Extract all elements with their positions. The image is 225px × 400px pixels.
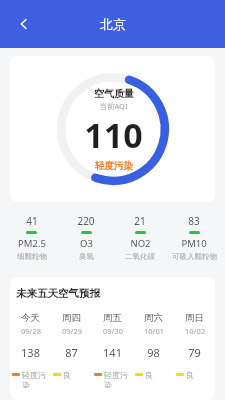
staticText: 周五 bbox=[103, 312, 122, 324]
staticText: PM2.5 bbox=[18, 237, 46, 250]
staticText: 141 bbox=[103, 345, 122, 360]
staticText: 110 bbox=[84, 112, 143, 158]
staticText: 41 bbox=[26, 214, 38, 228]
staticText: 二氧化碳 bbox=[125, 252, 155, 261]
button[interactable]: 83 bbox=[167, 212, 221, 263]
button[interactable]: 41 bbox=[4, 212, 59, 263]
staticText: 21 bbox=[134, 214, 146, 228]
button[interactable]: 周日 bbox=[174, 312, 215, 380]
staticText: 可吸入颗粒物 bbox=[172, 252, 217, 261]
staticText: 空气质量 bbox=[94, 87, 134, 100]
staticText: 98 bbox=[147, 345, 160, 360]
staticText: 09/30 bbox=[103, 326, 123, 336]
staticText: 北京 bbox=[100, 16, 126, 32]
staticText: 良 bbox=[186, 370, 194, 380]
button[interactable]: 周六 bbox=[133, 312, 174, 380]
staticText: 轻度污染 bbox=[95, 160, 133, 172]
button[interactable]: 周五 bbox=[92, 312, 133, 388]
staticText: 臭氧 bbox=[79, 252, 94, 261]
staticText: 细颗粒物 bbox=[17, 252, 47, 261]
button[interactable]: Back bbox=[8, 8, 40, 40]
staticText: 79 bbox=[188, 345, 201, 360]
staticText: 220 bbox=[77, 214, 95, 228]
button[interactable]: 220 bbox=[59, 212, 113, 263]
staticText: 良 bbox=[145, 370, 153, 380]
button[interactable]: 空气质量 bbox=[10, 56, 215, 202]
staticText: 轻度污染 bbox=[22, 370, 49, 388]
staticText: NO2 bbox=[130, 237, 151, 250]
staticText: 良 bbox=[63, 370, 71, 380]
staticText: 未来五天空气预报 bbox=[16, 287, 100, 300]
staticText: 138 bbox=[21, 345, 40, 360]
button[interactable]: 21 bbox=[113, 212, 167, 263]
staticText: 10/02 bbox=[185, 326, 205, 336]
staticText: 周日 bbox=[185, 312, 204, 324]
staticText: PM10 bbox=[181, 237, 207, 250]
staticText: 轻度污染 bbox=[104, 370, 131, 388]
staticText: 今天 bbox=[21, 312, 40, 324]
button[interactable]: 周四 bbox=[51, 312, 92, 380]
staticText: 09/28 bbox=[21, 326, 41, 336]
staticText: 周四 bbox=[62, 312, 81, 324]
staticText: 10/01 bbox=[144, 326, 164, 336]
button[interactable]: 今天 bbox=[10, 312, 51, 388]
staticText: 周六 bbox=[144, 312, 163, 324]
staticText: 当前AQI bbox=[99, 101, 128, 111]
staticText: 87 bbox=[65, 345, 78, 360]
staticText: 09/29 bbox=[62, 326, 82, 336]
staticText: O3 bbox=[80, 237, 93, 250]
staticText: 83 bbox=[188, 214, 200, 228]
